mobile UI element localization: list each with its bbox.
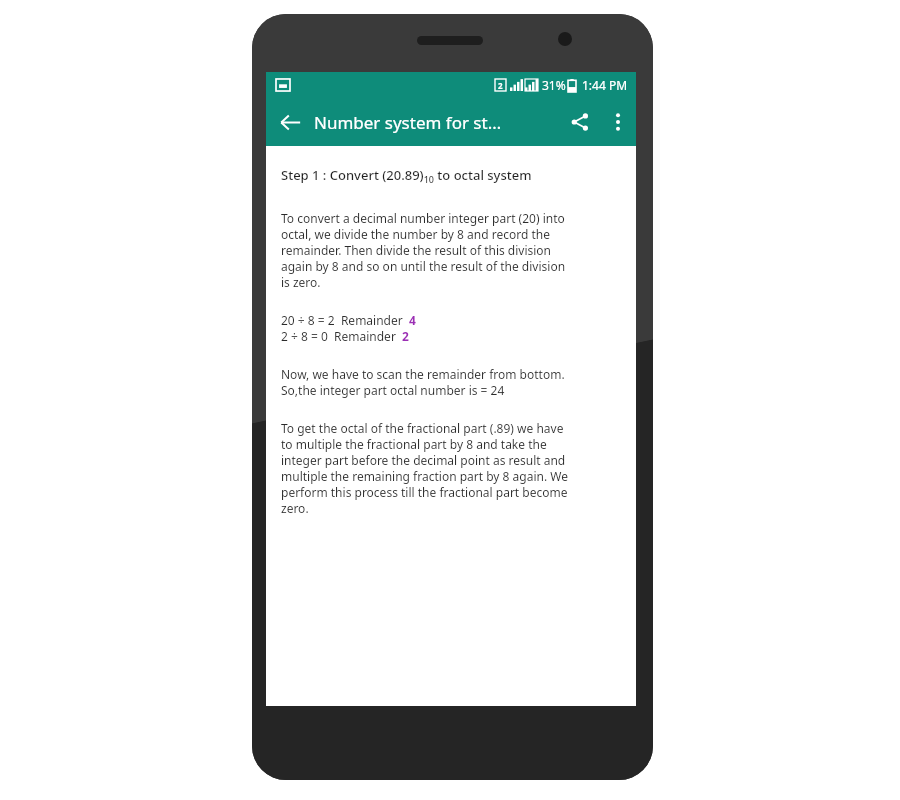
staticText: Step 1 : Convert (20.89)10 to octal syst… <box>281 166 532 186</box>
button[interactable]: Share <box>560 98 600 146</box>
staticText: 20 ÷ 8 = 2 Remainder 4 <box>281 312 416 328</box>
button[interactable]: More options <box>600 98 636 146</box>
staticText: perform this process till the fractional… <box>281 484 568 500</box>
staticText: is zero. <box>281 274 321 290</box>
staticText: again by 8 and so on until the result of… <box>281 258 566 274</box>
staticText: So,the integer part octal number is = 24 <box>281 382 505 398</box>
staticText: to multiple the fractional part by 8 and… <box>281 436 547 452</box>
staticText: 2 ÷ 8 = 0 Remainder 2 <box>281 328 409 344</box>
staticText: Now, we have to scan the remainder from … <box>281 366 565 382</box>
staticText: To convert a decimal number integer part… <box>281 210 565 226</box>
button[interactable]: Back <box>266 98 314 146</box>
staticText: remainder. Then divide the result of thi… <box>281 242 552 258</box>
staticText: To get the octal of the fractional part … <box>281 420 564 436</box>
staticText: 31% <box>542 77 566 93</box>
staticText: zero. <box>281 500 309 516</box>
staticText: Number system for st… <box>314 111 560 134</box>
staticText: integer part before the decimal point as… <box>281 452 566 468</box>
staticText: multiple the remaining fraction part by … <box>281 468 568 484</box>
staticText: 1:44 PM <box>582 77 628 93</box>
staticText: 2 <box>498 80 503 91</box>
staticText: octal, we divide the number by 8 and rec… <box>281 226 550 242</box>
